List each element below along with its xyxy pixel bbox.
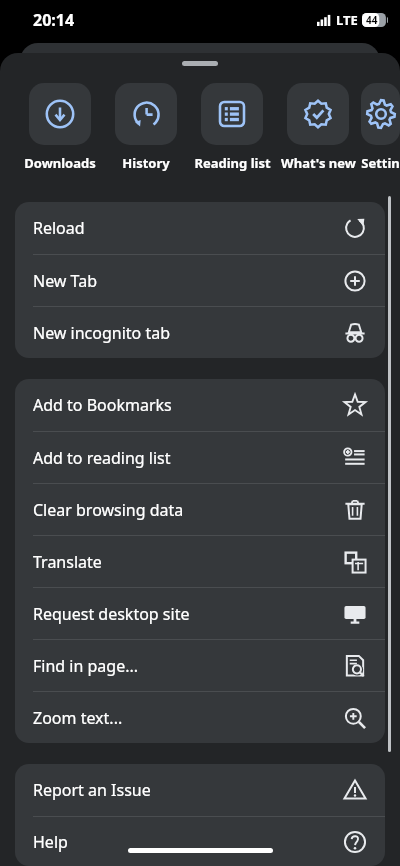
staticText: Reload bbox=[33, 217, 85, 239]
button[interactable]: Downloads bbox=[17, 83, 103, 172]
staticText: Downloads bbox=[24, 154, 96, 172]
button[interactable]: Help bbox=[15, 817, 385, 866]
staticText: Find in page... bbox=[33, 655, 139, 677]
staticText: New Tab bbox=[33, 270, 98, 292]
staticText: Zoom text... bbox=[33, 707, 123, 729]
staticText: Add to reading list bbox=[33, 447, 171, 469]
button[interactable]: Translate bbox=[15, 536, 385, 587]
staticText: What's new bbox=[281, 154, 356, 172]
staticText: Translate bbox=[33, 551, 102, 573]
staticText: New incognito tab bbox=[33, 322, 171, 344]
button[interactable]: Clear browsing data bbox=[15, 484, 385, 535]
button[interactable]: New Tab bbox=[15, 255, 385, 306]
staticText: 44 bbox=[366, 13, 378, 27]
button[interactable]: Find in page... bbox=[15, 640, 385, 691]
button[interactable]: Reading list bbox=[189, 83, 275, 172]
button[interactable]: What's new bbox=[275, 83, 361, 172]
staticText: History bbox=[122, 154, 170, 172]
staticText: Clear browsing data bbox=[33, 499, 184, 521]
staticText: Help bbox=[33, 831, 68, 853]
staticText: Report an Issue bbox=[33, 779, 151, 801]
staticText: LTE bbox=[336, 11, 358, 29]
staticText: Add to Bookmarks bbox=[33, 394, 172, 416]
button[interactable]: Report an Issue bbox=[15, 764, 385, 816]
button[interactable]: New incognito tab bbox=[15, 307, 385, 358]
button[interactable]: Add to reading list bbox=[15, 432, 385, 483]
button[interactable]: Zoom text... bbox=[15, 692, 385, 743]
button[interactable]: Settings bbox=[361, 83, 400, 172]
button[interactable]: History bbox=[103, 83, 189, 172]
staticText: Reading list bbox=[194, 154, 271, 172]
button[interactable]: Add to Bookmarks bbox=[15, 379, 385, 431]
staticText: Request desktop site bbox=[33, 603, 190, 625]
button[interactable]: Request desktop site bbox=[15, 588, 385, 639]
staticText: 20:14 bbox=[33, 9, 75, 31]
button[interactable]: Reload bbox=[15, 202, 385, 254]
staticText: Settings bbox=[361, 154, 400, 172]
